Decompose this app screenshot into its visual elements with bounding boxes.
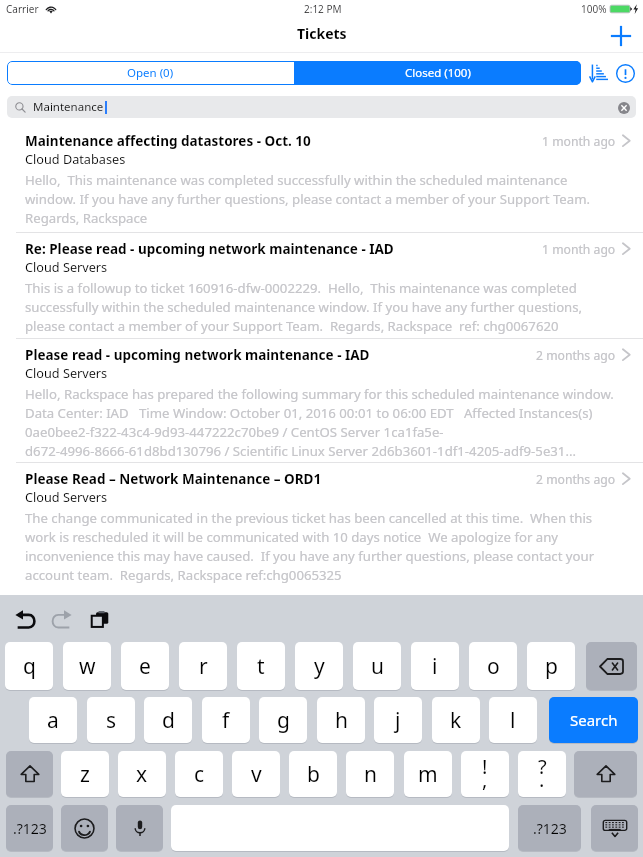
button[interactable]: Sort xyxy=(585,60,611,86)
staticText: 2:12 PM xyxy=(304,2,342,16)
button[interactable]: t xyxy=(237,642,285,690)
staticText: Cloud Databases xyxy=(25,150,126,167)
staticText: Please read - upcoming network maintenan… xyxy=(25,346,370,364)
button[interactable]: q xyxy=(5,642,53,690)
button[interactable]: a xyxy=(29,697,77,743)
staticText: z xyxy=(80,760,90,789)
staticText: 2 months ago xyxy=(536,471,616,488)
staticText: p xyxy=(545,652,558,681)
staticText: e xyxy=(139,652,151,681)
button[interactable]: u xyxy=(353,642,401,690)
button[interactable]: Maintenance xyxy=(7,96,636,118)
staticText: Search xyxy=(570,710,618,730)
staticText: o xyxy=(487,652,500,681)
staticText: s xyxy=(106,706,117,735)
button[interactable]: Search xyxy=(549,697,638,743)
button[interactable]: i xyxy=(411,642,459,690)
staticText: 100% xyxy=(581,2,607,16)
button[interactable]: p xyxy=(527,642,575,690)
button[interactable]: r xyxy=(179,642,227,690)
staticText: .?123 xyxy=(13,819,47,838)
staticText: The change communicated in the previous … xyxy=(25,509,621,583)
staticText: Maintenance xyxy=(33,99,104,115)
button[interactable]: w xyxy=(63,642,111,690)
staticText: k xyxy=(450,706,462,735)
staticText: n xyxy=(364,760,377,789)
staticText: Cloud Servers xyxy=(25,488,108,505)
button[interactable]: Backspace xyxy=(586,642,637,690)
button[interactable]: n xyxy=(346,751,394,797)
button[interactable]: x xyxy=(118,751,166,797)
staticText: ! xyxy=(482,753,488,780)
button[interactable]: Open (0) xyxy=(7,61,294,85)
staticText: 1 month ago xyxy=(542,133,616,150)
button[interactable]: Alerts xyxy=(612,60,638,86)
staticText: ? xyxy=(538,753,547,780)
staticText: Closed (100) xyxy=(405,65,471,81)
staticText: h xyxy=(335,706,348,735)
button[interactable]: Redo xyxy=(47,604,77,634)
button[interactable]: Maintenance affecting datastores - Oct. … xyxy=(0,125,643,232)
button[interactable]: h xyxy=(317,697,365,743)
staticText: Please Read – Network Maintenance – ORD1 xyxy=(25,470,322,488)
staticText: i xyxy=(432,652,438,681)
staticText: Maintenance affecting datastores - Oct. … xyxy=(25,132,311,150)
button[interactable]: s xyxy=(87,697,135,743)
staticText: .?123 xyxy=(533,819,567,838)
button[interactable]: d xyxy=(144,697,192,743)
button[interactable]: j xyxy=(374,697,422,743)
staticText: v xyxy=(251,760,262,789)
button[interactable]: .?123 xyxy=(6,805,53,851)
button[interactable]: Add ticket xyxy=(606,21,636,51)
staticText: a xyxy=(47,706,59,735)
button[interactable]: Shift xyxy=(574,751,637,797)
button[interactable]: ! xyxy=(461,751,509,797)
staticText: r xyxy=(199,652,208,681)
button[interactable]: f xyxy=(202,697,250,743)
button[interactable]: Undo xyxy=(9,604,39,634)
staticText: q xyxy=(23,652,36,681)
button[interactable]: e xyxy=(121,642,169,690)
button[interactable]: z xyxy=(61,751,109,797)
staticText: u xyxy=(371,652,384,681)
button[interactable]: Re: Please read - upcoming network maint… xyxy=(0,233,643,338)
button[interactable]: g xyxy=(259,697,307,743)
staticText: x xyxy=(136,760,148,789)
button[interactable]: Please read - upcoming network maintenan… xyxy=(0,339,643,462)
button[interactable]: y xyxy=(295,642,343,690)
staticText: Open (0) xyxy=(127,65,174,81)
button[interactable]: Hide keyboard xyxy=(591,805,638,851)
staticText: Cloud Servers xyxy=(25,364,108,381)
button[interactable]: Emoji xyxy=(61,805,108,851)
button[interactable]: Dictate xyxy=(116,805,163,851)
staticText: 2 months ago xyxy=(536,347,616,364)
staticText: Hello, This maintenance was completed su… xyxy=(25,171,621,226)
staticText: g xyxy=(277,706,290,735)
staticText: c xyxy=(194,760,205,789)
button[interactable]: m xyxy=(404,751,452,797)
staticText: Re: Please read - upcoming network maint… xyxy=(25,240,394,258)
button[interactable]: c xyxy=(175,751,223,797)
staticText: y xyxy=(314,652,325,681)
staticText: b xyxy=(307,760,320,789)
staticText: d xyxy=(162,706,175,735)
button[interactable]: Paste xyxy=(85,604,115,634)
button[interactable]: b xyxy=(289,751,337,797)
button[interactable]: l xyxy=(489,697,537,743)
staticText: w xyxy=(79,652,96,681)
button[interactable]: Please Read – Network Maintenance – ORD1 xyxy=(0,463,643,587)
button[interactable]: Shift xyxy=(6,751,53,797)
staticText: Carrier xyxy=(6,2,39,16)
button[interactable]: v xyxy=(232,751,280,797)
button[interactable]: o xyxy=(469,642,517,690)
button[interactable]: .?123 xyxy=(518,805,581,851)
staticText: 1 month ago xyxy=(542,241,616,258)
staticText: m xyxy=(418,760,438,789)
button[interactable]: Clear search xyxy=(617,101,630,114)
staticText: . xyxy=(539,766,545,793)
button[interactable]: k xyxy=(432,697,480,743)
staticText: This is a followup to ticket 160916-dfw-… xyxy=(25,279,621,334)
button[interactable]: ? xyxy=(518,751,566,797)
button[interactable]: Closed (100) xyxy=(294,61,581,85)
